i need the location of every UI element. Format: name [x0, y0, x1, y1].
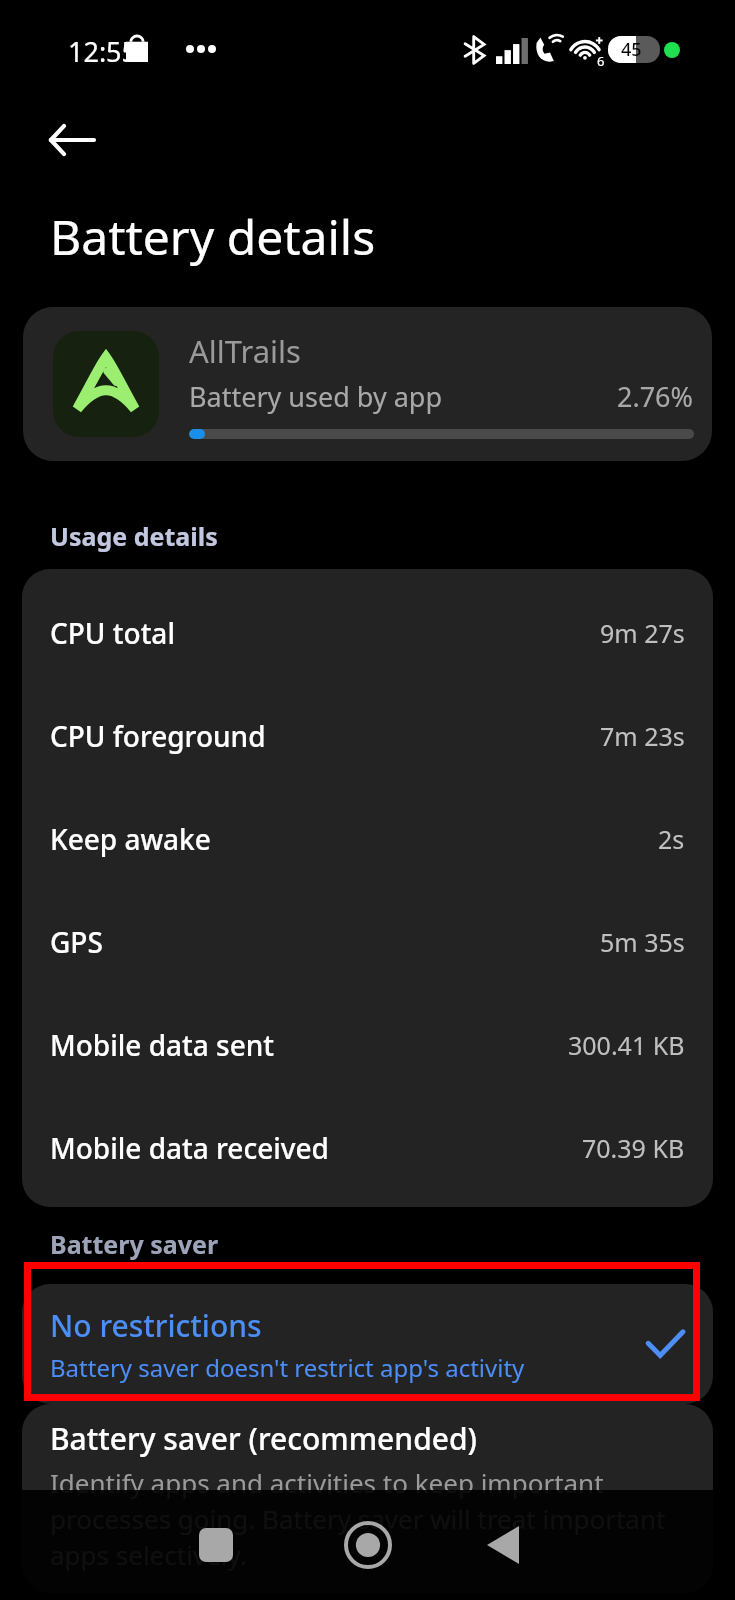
- button[interactable]: CPU total: [22, 581, 713, 684]
- staticText: 9m 27s: [600, 616, 685, 650]
- staticText: No restrictions: [50, 1305, 262, 1346]
- button[interactable]: Mobile data received: [22, 1096, 713, 1199]
- staticText: Mobile data received: [50, 1129, 582, 1167]
- button[interactable]: AllTrails: [23, 307, 712, 461]
- staticText: Battery details: [50, 204, 376, 269]
- staticText: Battery used by app: [189, 378, 617, 415]
- staticText: Keep awake: [50, 820, 658, 858]
- staticText: Battery saver (recommended): [50, 1418, 477, 1459]
- staticText: Usage details: [50, 519, 218, 553]
- button[interactable]: Recent apps: [176, 1505, 256, 1585]
- staticText: GPS: [50, 923, 600, 961]
- staticText: Battery saver: [50, 1227, 219, 1261]
- staticText: Mobile data sent: [50, 1026, 568, 1064]
- staticText: 7m 23s: [600, 719, 685, 753]
- staticText: Battery saver doesn't restrict app's act…: [50, 1351, 525, 1384]
- staticText: 300.41 KB: [568, 1028, 685, 1062]
- button[interactable]: Keep awake: [22, 787, 713, 890]
- staticText: 2.76%: [617, 378, 694, 415]
- staticText: 12:55: [68, 33, 138, 70]
- staticText: CPU total: [50, 614, 600, 652]
- button[interactable]: GPS: [22, 890, 713, 993]
- button[interactable]: CPU foreground: [22, 684, 713, 787]
- staticText: 6: [597, 52, 605, 70]
- staticText: AllTrails: [189, 330, 301, 372]
- staticText: Identify apps and activities to keep imp…: [50, 1465, 685, 1573]
- staticText: CPU foreground: [50, 717, 600, 755]
- staticText: 45: [621, 37, 642, 62]
- staticText: 70.39 KB: [582, 1131, 685, 1165]
- button[interactable]: Mobile data sent: [22, 993, 713, 1096]
- button[interactable]: Battery saver (recommended): [22, 1404, 713, 1593]
- button[interactable]: No restrictions: [22, 1284, 713, 1404]
- button[interactable]: Back: [463, 1505, 543, 1585]
- button[interactable]: Back: [32, 100, 112, 180]
- staticText: 2s: [658, 822, 685, 856]
- button[interactable]: Home: [326, 1503, 410, 1587]
- staticText: 5m 35s: [600, 925, 685, 959]
